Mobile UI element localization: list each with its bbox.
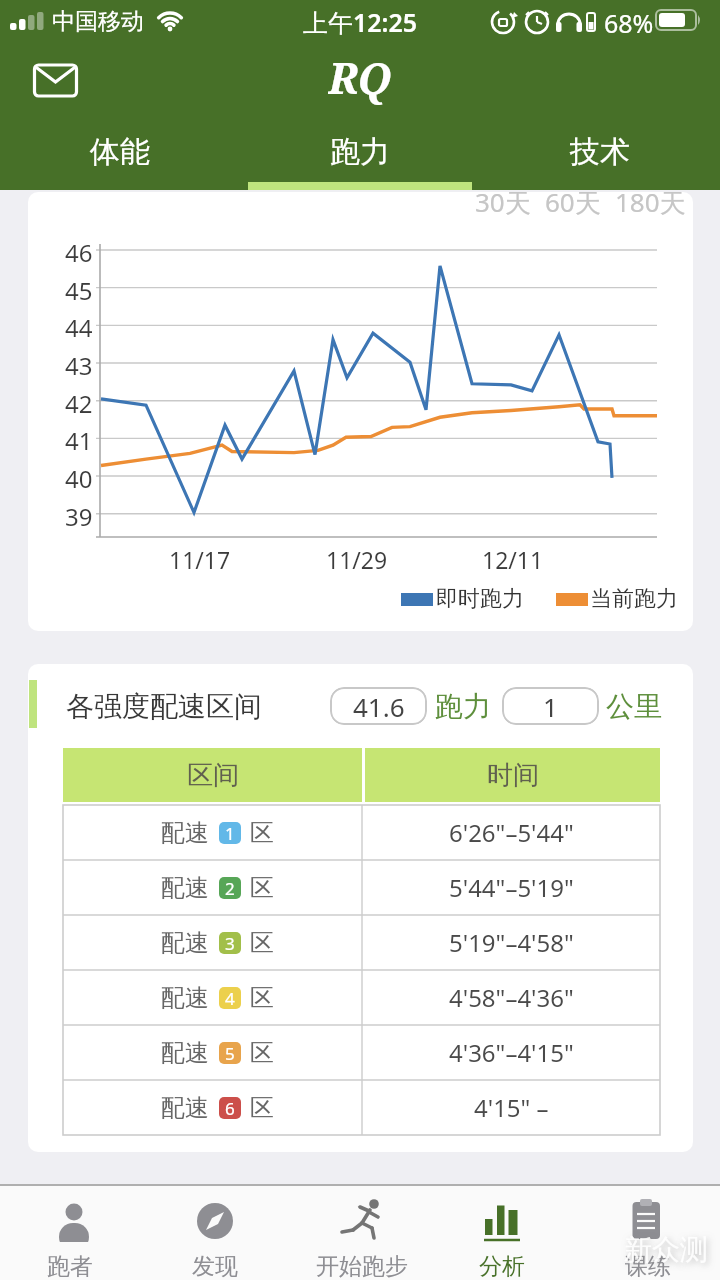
button[interactable]: 跑力 <box>240 122 480 182</box>
staticText: 区 <box>250 1038 274 1068</box>
staticText: 40 <box>65 462 93 490</box>
button[interactable]: 1 <box>502 687 599 725</box>
button[interactable]: 发现 <box>149 1184 281 1280</box>
staticText: 发现 <box>192 1252 238 1278</box>
button[interactable]: 配速 <box>63 1080 660 1135</box>
staticText: 课练 <box>625 1252 671 1278</box>
button[interactable] <box>33 58 79 102</box>
button[interactable]: 分析 <box>436 1184 568 1280</box>
staticText: 开始跑步 <box>316 1252 408 1278</box>
staticText: 5 <box>225 1042 235 1064</box>
staticText: 分析 <box>479 1252 525 1278</box>
staticText: 12/11 <box>482 544 544 572</box>
staticText: 1 <box>543 689 558 724</box>
staticText: 配速 <box>161 1093 209 1123</box>
staticText: 各强度配速区间 <box>66 689 262 724</box>
staticText: 跑力 <box>435 689 491 724</box>
button[interactable]: 跑者 <box>4 1184 136 1280</box>
staticText: 中国移动 <box>52 7 144 36</box>
staticText: 5'19"–4'58" <box>449 926 574 959</box>
button[interactable]: 配速 <box>63 860 660 915</box>
staticText: 配速 <box>161 873 209 903</box>
staticText: 39 <box>65 500 93 528</box>
staticText: 技术 <box>570 133 630 171</box>
button[interactable]: 41.6 <box>330 687 427 725</box>
staticText: 30天 <box>475 192 531 220</box>
staticText: 11/29 <box>326 544 388 572</box>
button[interactable]: 60天 <box>545 192 601 220</box>
button[interactable]: 配速 <box>63 915 660 970</box>
staticText: 区 <box>250 873 274 903</box>
staticText: 4'15" – <box>474 1091 549 1124</box>
button[interactable]: 开始跑步 <box>296 1184 428 1280</box>
staticText: RQ <box>328 48 392 106</box>
staticText: 即时跑力 <box>436 585 524 613</box>
button[interactable]: 配速 <box>63 805 660 860</box>
staticText: 配速 <box>161 1038 209 1068</box>
staticText: 6'26"–5'44" <box>449 816 574 849</box>
staticText: 区 <box>250 1093 274 1123</box>
staticText: 体能 <box>90 133 150 171</box>
staticText: 6 <box>225 1097 235 1119</box>
staticText: 区 <box>250 928 274 958</box>
staticText: 41 <box>65 424 93 452</box>
staticText: 4'58"–4'36" <box>449 981 574 1014</box>
staticText: 2 <box>225 877 235 899</box>
staticText: 3 <box>225 932 235 954</box>
staticText: 43 <box>65 349 93 377</box>
button[interactable]: 配速 <box>63 1025 660 1080</box>
button[interactable]: 30天 <box>475 192 531 220</box>
staticText: 跑力 <box>330 133 390 171</box>
staticText: 上午12:25 <box>303 5 418 37</box>
staticText: 4 <box>225 987 235 1009</box>
staticText: 跑者 <box>47 1252 93 1278</box>
staticText: 68% <box>604 6 654 36</box>
staticText: 区间 <box>187 759 239 792</box>
button[interactable]: 体能 <box>0 122 240 182</box>
staticText: 时间 <box>487 759 539 792</box>
staticText: 区 <box>250 983 274 1013</box>
staticText: 当前跑力 <box>590 585 678 613</box>
staticText: 46 <box>65 236 93 264</box>
staticText: 4'36"–4'15" <box>449 1036 574 1069</box>
staticText: 180天 <box>615 192 686 220</box>
button[interactable]: 180天 <box>615 192 686 220</box>
staticText: 配速 <box>161 818 209 848</box>
staticText: 配速 <box>161 983 209 1013</box>
staticText: 45 <box>65 274 93 302</box>
staticText: 区 <box>250 818 274 848</box>
staticText: 41.6 <box>353 689 405 724</box>
button[interactable]: 技术 <box>480 122 720 182</box>
staticText: 配速 <box>161 928 209 958</box>
staticText: 42 <box>65 387 93 415</box>
staticText: 11/17 <box>169 544 231 572</box>
staticText: 5'44"–5'19" <box>449 871 574 904</box>
staticText: 1 <box>225 822 235 844</box>
staticText: 44 <box>65 311 93 339</box>
button[interactable]: 配速 <box>63 970 660 1025</box>
staticText: 新众测 <box>624 1232 708 1267</box>
staticText: 公里 <box>606 689 662 724</box>
button[interactable]: 课练 <box>582 1184 714 1280</box>
staticText: 60天 <box>545 192 601 220</box>
